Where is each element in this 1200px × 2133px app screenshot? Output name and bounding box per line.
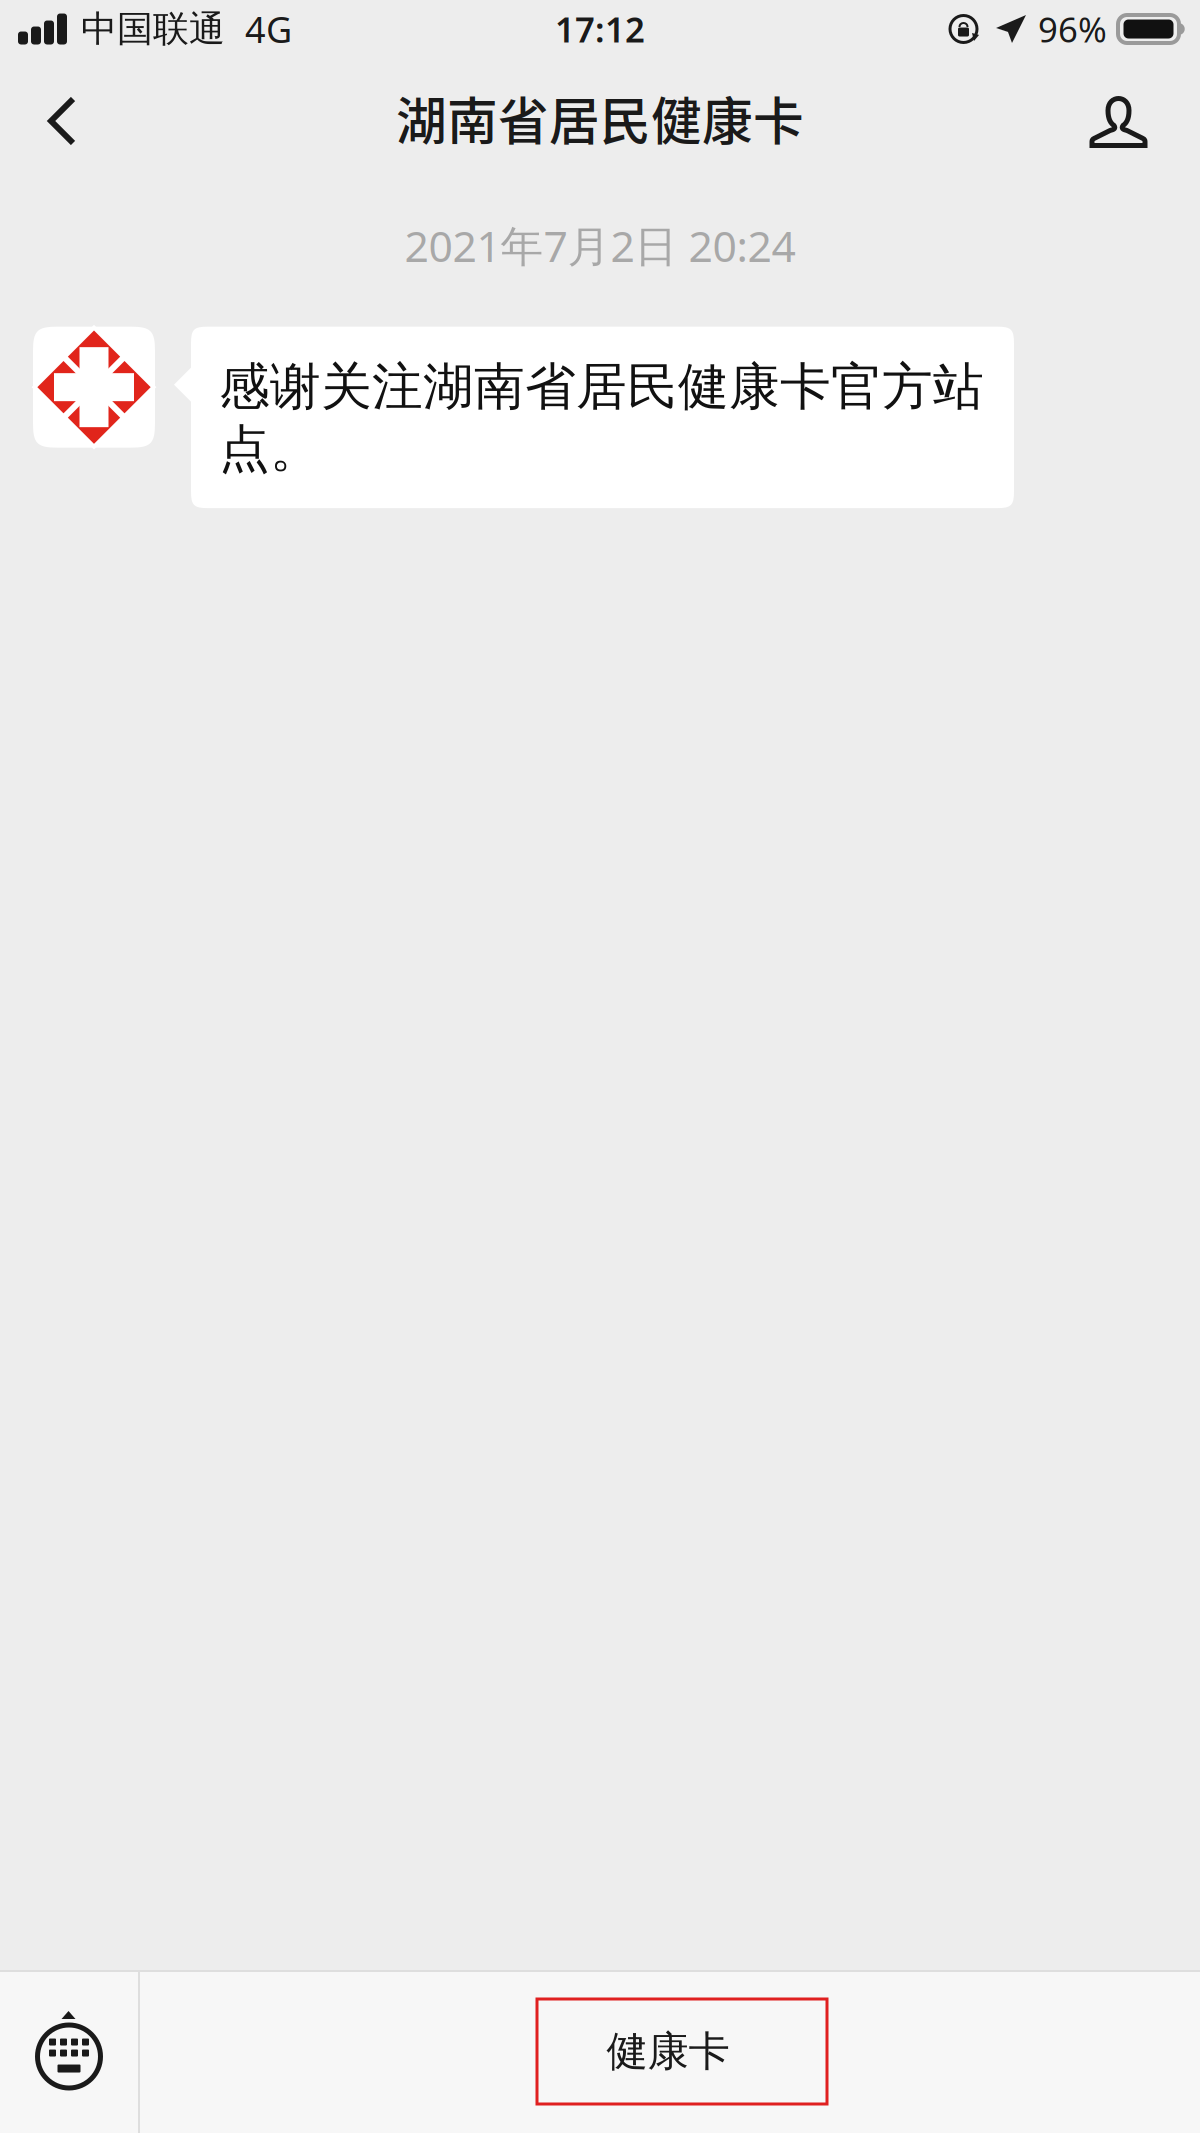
staticText: 健康卡 [606, 2026, 729, 2077]
button[interactable]: Account [1064, 63, 1174, 179]
staticText: 中国联通 [81, 7, 225, 51]
staticText: 湖南省居民健康卡 [396, 81, 804, 155]
button[interactable]: 湖南省居民健康卡 profile [33, 327, 155, 448]
staticText: 96% [1038, 6, 1107, 52]
staticText: 2021年7月2日 20:24 [404, 217, 795, 274]
staticText: 4G [245, 5, 292, 53]
button[interactable]: 健康卡 [537, 1999, 827, 2104]
button[interactable]: Back [7, 63, 117, 179]
staticText: 17:12 [555, 6, 645, 52]
button[interactable]: Keyboard [0, 1970, 138, 2133]
button[interactable]: 感谢关注湖南省居民健康卡官方站点。 [191, 327, 1014, 508]
staticText: 感谢关注湖南省居民健康卡官方站点。 [219, 356, 984, 480]
